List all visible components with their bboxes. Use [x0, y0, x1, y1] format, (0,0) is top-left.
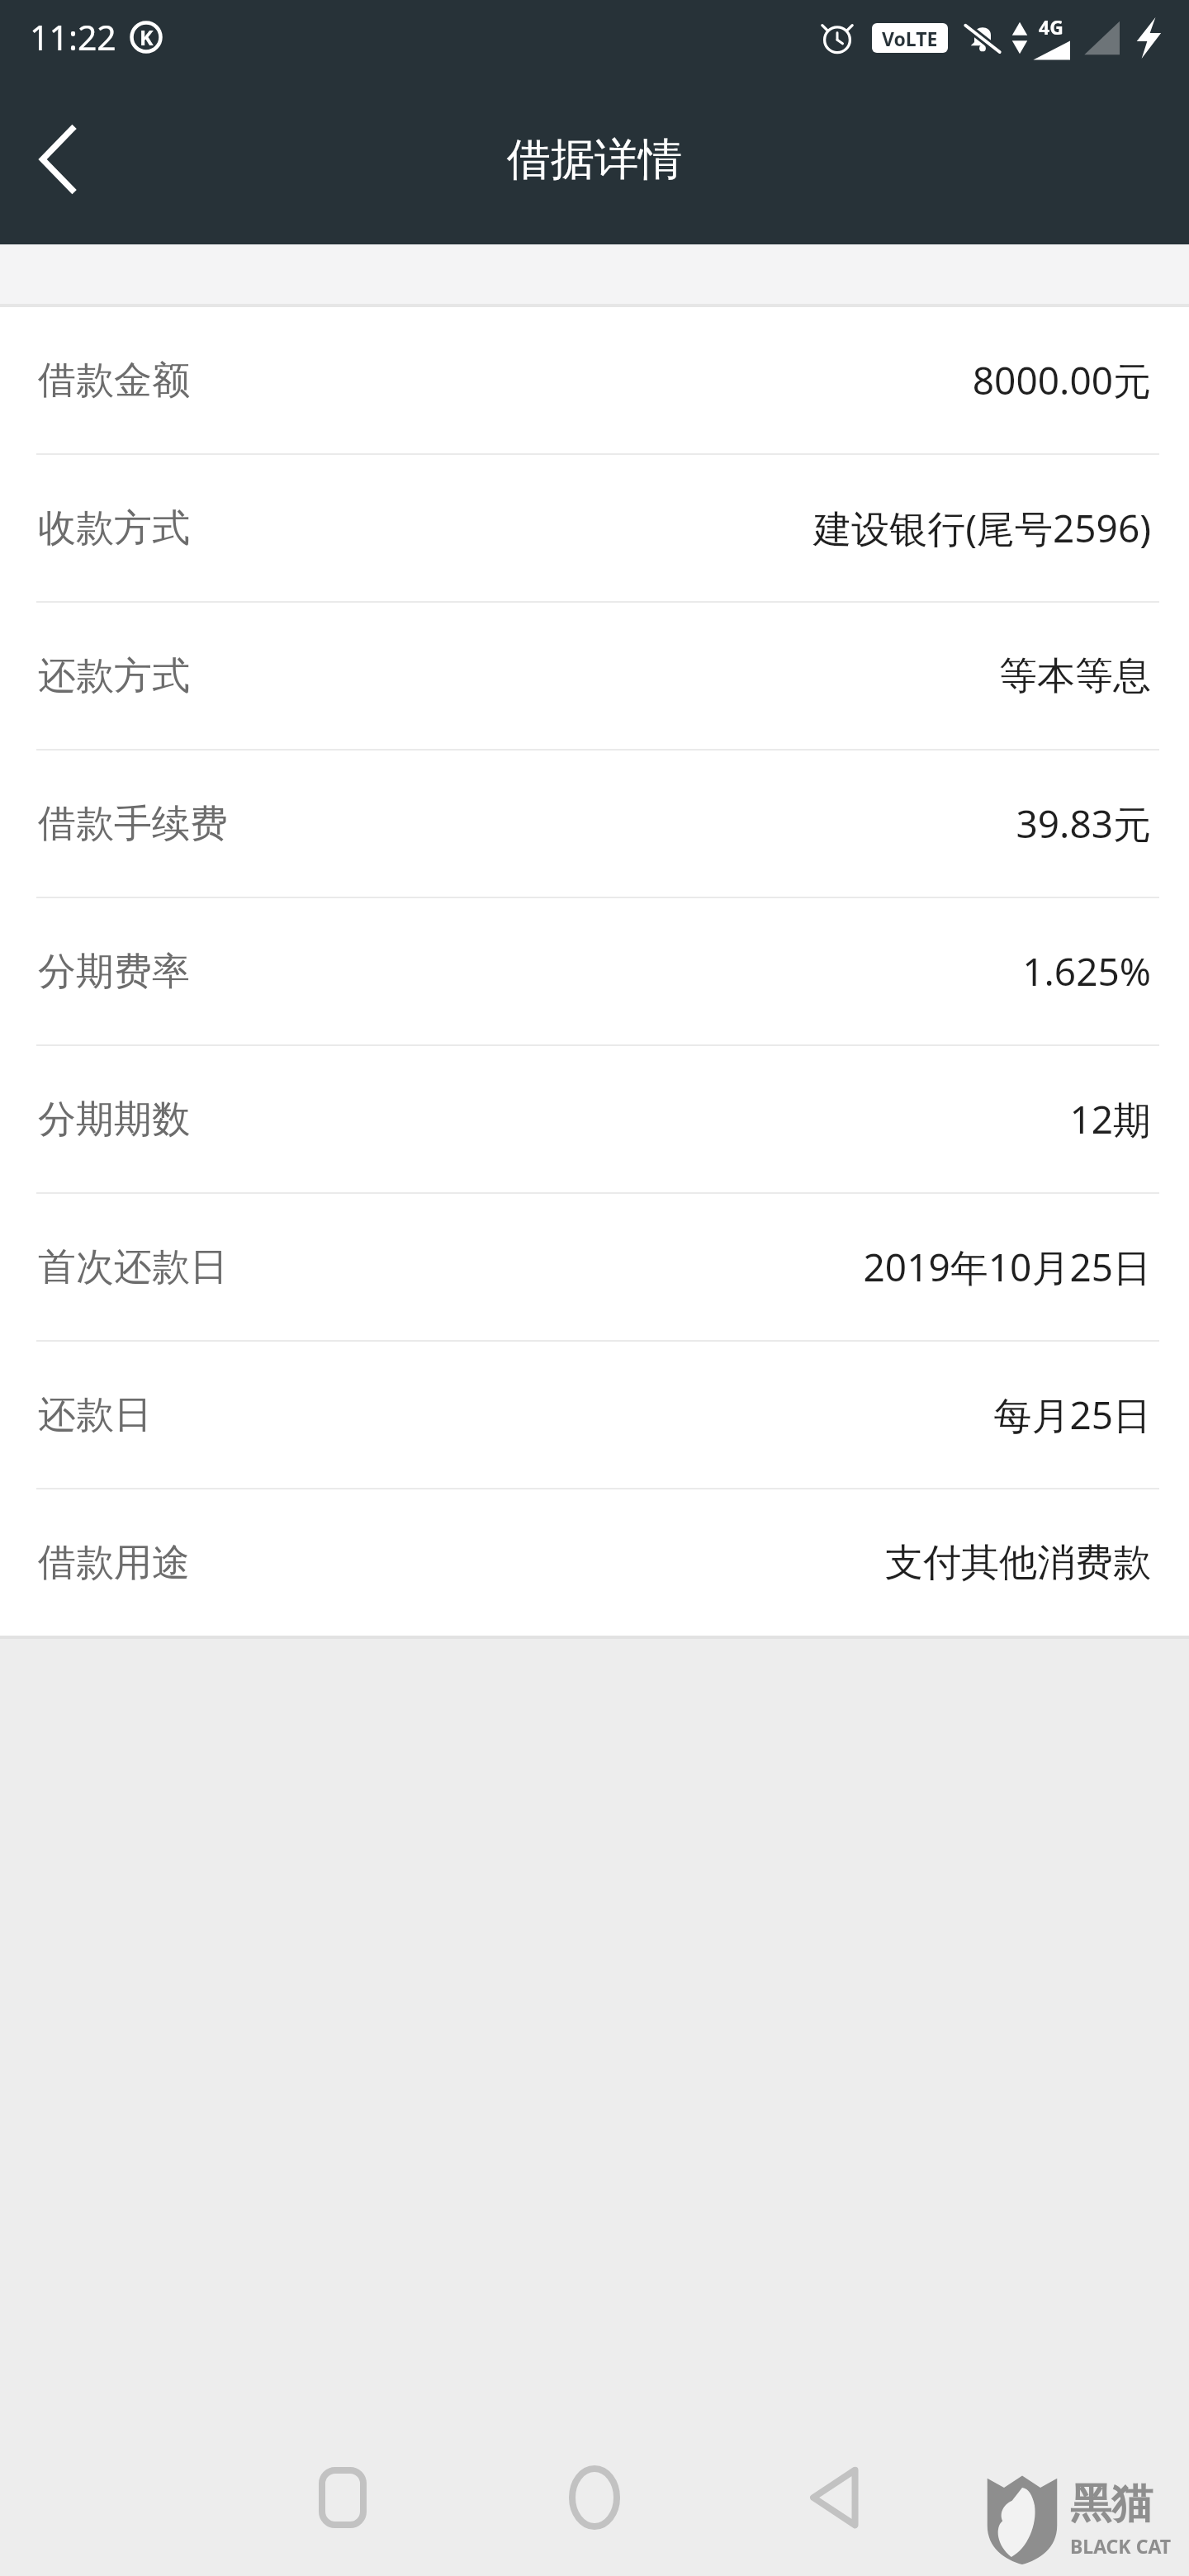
button[interactable]: 还款日	[0, 1342, 1189, 1488]
staticText: 4G	[1039, 14, 1063, 40]
button[interactable]: 首次还款日	[0, 1194, 1189, 1340]
staticText: 1.625%	[1022, 945, 1151, 997]
staticText: 支付其他消费款	[885, 1539, 1151, 1587]
staticText: 11:22	[30, 14, 116, 60]
staticText: 首次还款日	[38, 1243, 228, 1291]
staticText: 12期	[1069, 1093, 1151, 1145]
button[interactable]: Back	[0, 97, 116, 221]
button[interactable]: 分期期数	[0, 1046, 1189, 1192]
button[interactable]: Home	[537, 2440, 652, 2555]
staticText: 还款日	[38, 1391, 152, 1439]
staticText: 分期费率	[38, 948, 190, 996]
staticText: 分期期数	[38, 1096, 190, 1144]
staticText: 还款方式	[38, 652, 190, 700]
staticText: 等本等息	[999, 652, 1151, 700]
staticText: 黑猫	[1070, 2478, 1153, 2530]
staticText: 收款方式	[38, 504, 190, 552]
staticText: 39.83元	[1016, 798, 1151, 850]
staticText: 每月25日	[993, 1389, 1151, 1441]
button[interactable]: 借款手续费	[0, 751, 1189, 897]
staticText: 借款手续费	[38, 800, 228, 848]
staticText: 借据详情	[507, 132, 682, 187]
staticText: 建设银行(尾号2596)	[813, 502, 1151, 554]
staticText: 借款用途	[38, 1539, 190, 1587]
staticText: VoLTE	[882, 26, 938, 51]
staticText: K	[140, 23, 154, 51]
button[interactable]: Recents	[285, 2440, 400, 2555]
staticText: 8000.00元	[972, 354, 1151, 406]
staticText: 借款金额	[38, 357, 190, 405]
button[interactable]: 借款金额	[0, 307, 1189, 453]
button[interactable]: 还款方式	[0, 603, 1189, 749]
staticText: 2019年10月25日	[863, 1241, 1151, 1293]
button[interactable]: Back	[776, 2440, 892, 2555]
button[interactable]: 分期费率	[0, 898, 1189, 1044]
staticText: BLACK CAT	[1070, 2533, 1171, 2559]
button[interactable]: 借款用途	[0, 1489, 1189, 1636]
button[interactable]: 收款方式	[0, 455, 1189, 601]
